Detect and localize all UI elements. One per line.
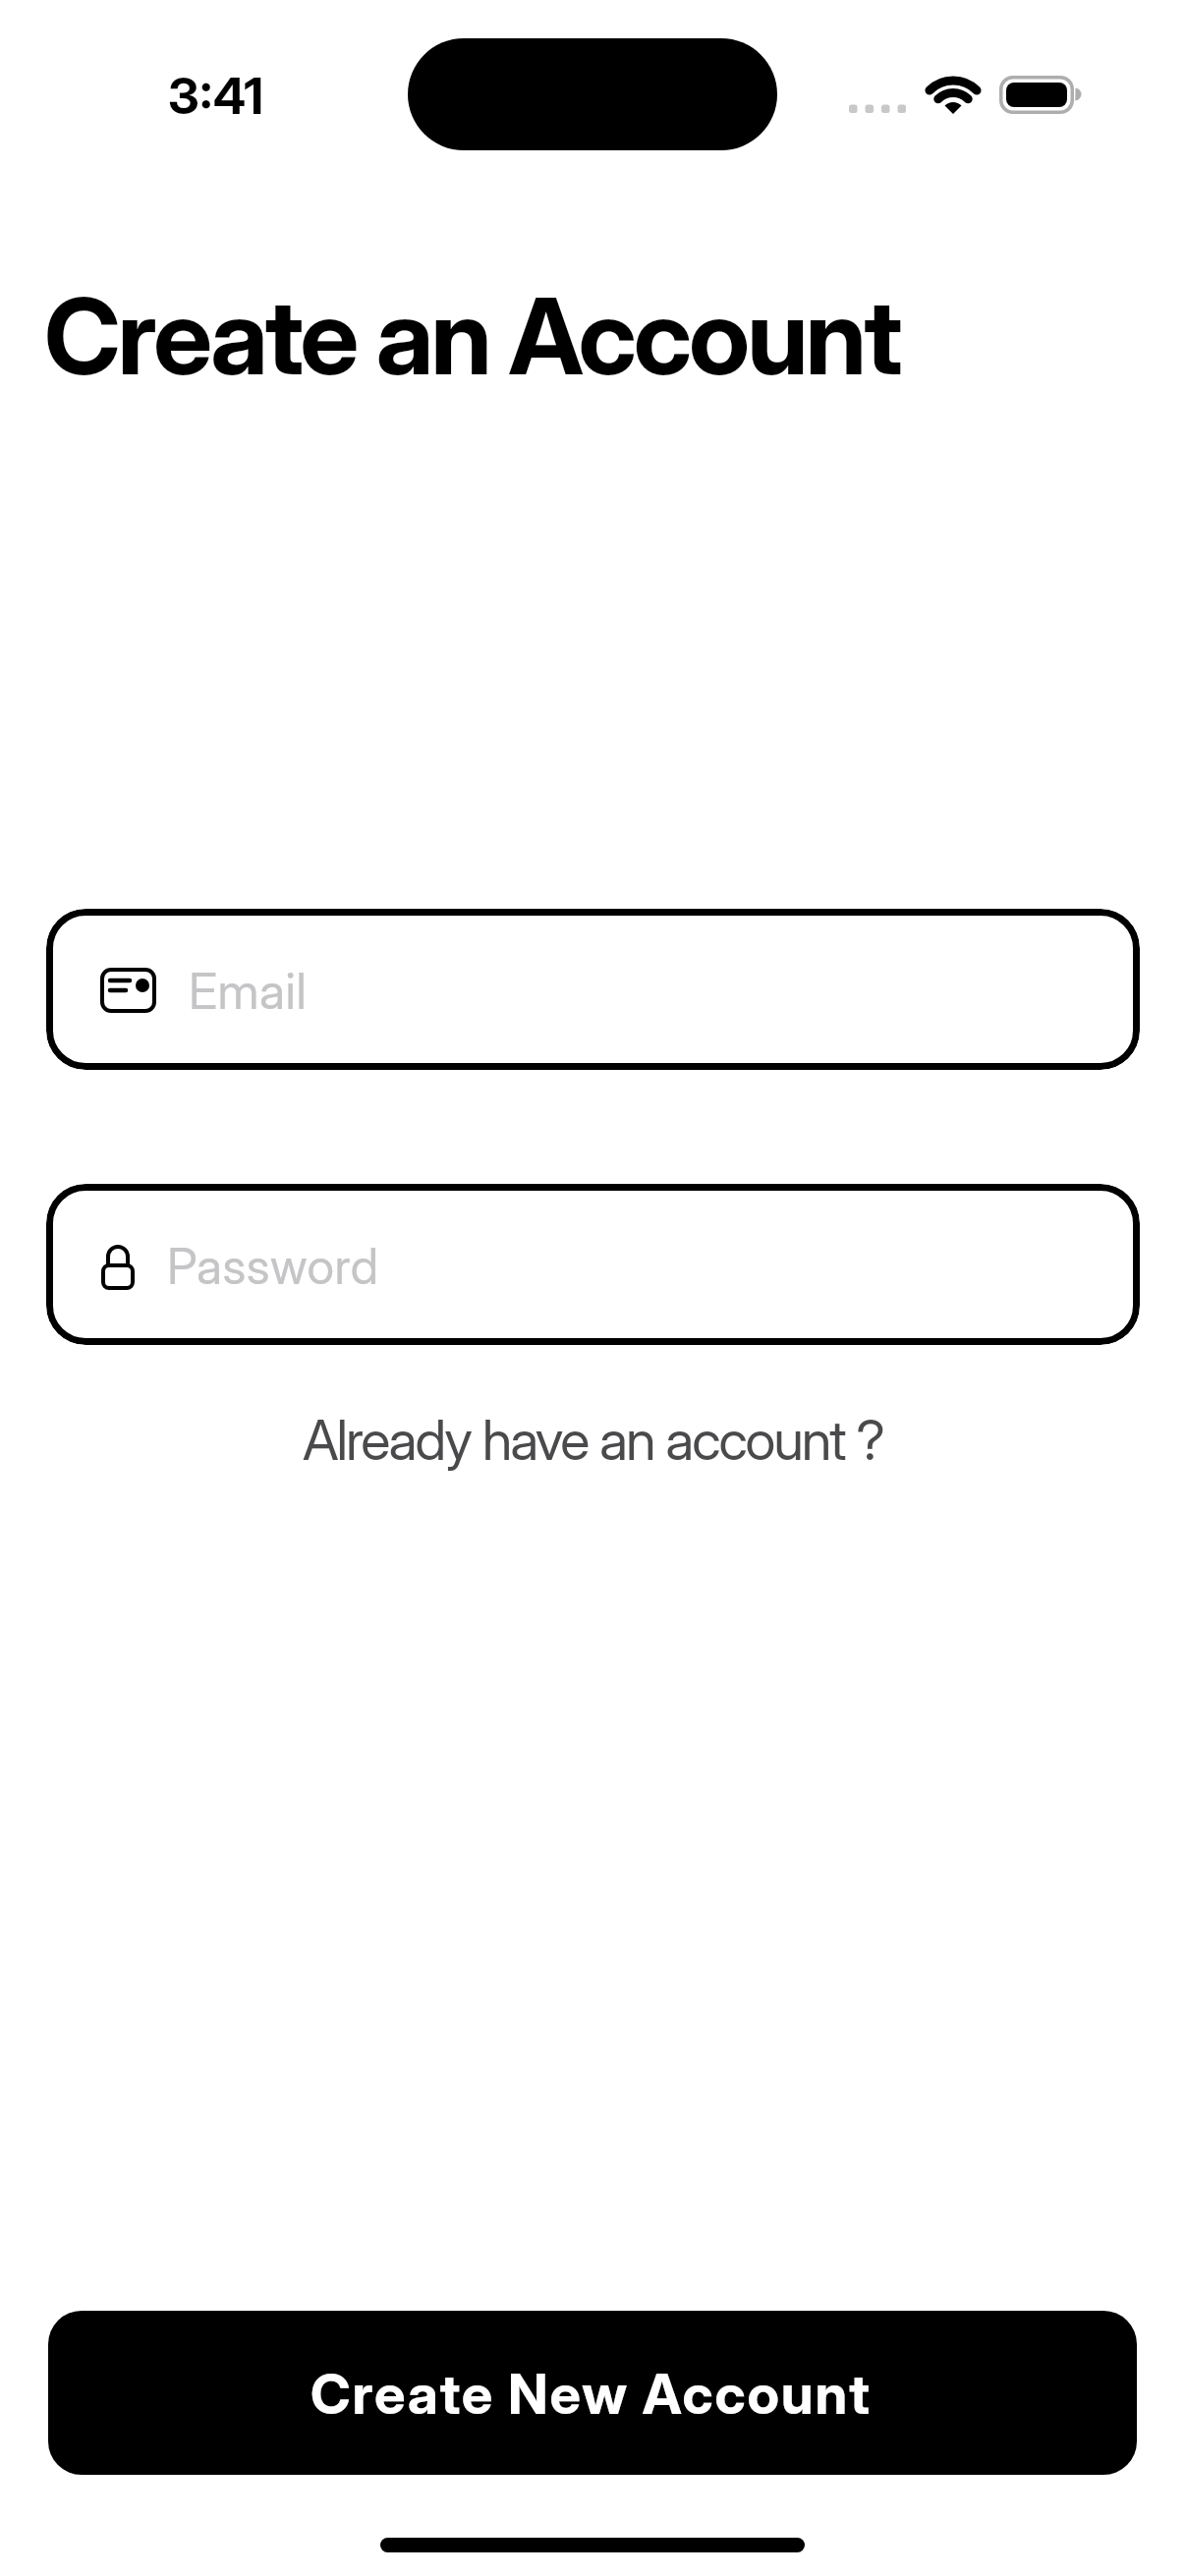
button[interactable]: Already have an account ? <box>303 1407 883 1474</box>
button[interactable]: Password <box>46 1184 1140 1345</box>
staticText: Email <box>189 962 308 1021</box>
staticText: 3:41 <box>168 66 264 127</box>
staticText: Create New Account <box>310 2361 872 2428</box>
button[interactable]: Create New Account <box>48 2311 1137 2475</box>
button[interactable]: Email <box>46 909 1140 1070</box>
staticText: Create an Account <box>44 272 900 399</box>
staticText: Password <box>167 1237 379 1296</box>
